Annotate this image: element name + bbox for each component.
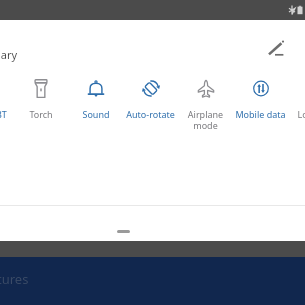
staticText: uary (0, 47, 18, 62)
button[interactable]: Torch (13, 79, 68, 120)
button[interactable]: BT (0, 108, 10, 122)
button[interactable] (0, 79, 13, 120)
staticText: Sound (82, 108, 110, 120)
button[interactable]: Location (288, 79, 305, 120)
staticText: Airplane mode (178, 108, 233, 132)
button[interactable]: Airplane mode (178, 79, 233, 132)
staticText: Auto-rotate (126, 108, 175, 120)
button[interactable]: Auto-rotate (123, 79, 178, 120)
button[interactable]: Sound (68, 79, 123, 120)
button[interactable]: Edit (267, 40, 287, 60)
staticText: tures (0, 270, 29, 288)
staticText: Mobile data (235, 108, 286, 120)
staticText: BT (0, 108, 7, 120)
button[interactable]: Mobile data (233, 79, 288, 120)
staticText: Torch (29, 108, 53, 120)
staticText: Location (297, 108, 305, 120)
